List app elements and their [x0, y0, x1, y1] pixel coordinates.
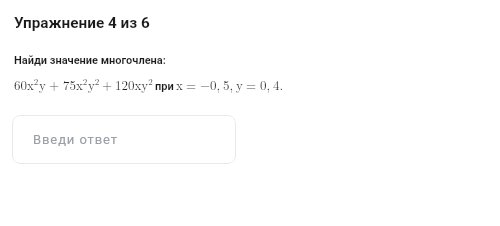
- staticText: 60x2: [14, 75, 39, 93]
- staticText: 120xy2: [115, 75, 153, 93]
- staticText: y: [39, 75, 46, 93]
- staticText: =: [246, 75, 257, 93]
- staticText: 75x2: [63, 75, 88, 93]
- staticText: 4.: [273, 75, 284, 93]
- staticText: Найди значение многочлена:: [14, 54, 166, 67]
- staticText: −0,: [200, 75, 221, 93]
- staticText: x: [176, 75, 183, 93]
- staticText: y: [236, 75, 243, 93]
- staticText: =: [186, 75, 197, 93]
- staticText: Упражнение 4 из 6: [14, 14, 150, 32]
- staticText: 5,: [223, 75, 234, 93]
- staticText: 0,: [260, 75, 271, 93]
- button[interactable]: Введи ответ: [12, 115, 236, 164]
- staticText: Введи ответ: [33, 132, 118, 147]
- staticText: при: [155, 80, 174, 93]
- staticText: y2: [88, 75, 100, 93]
- staticText: +: [102, 75, 113, 93]
- staticText: +: [49, 75, 60, 93]
